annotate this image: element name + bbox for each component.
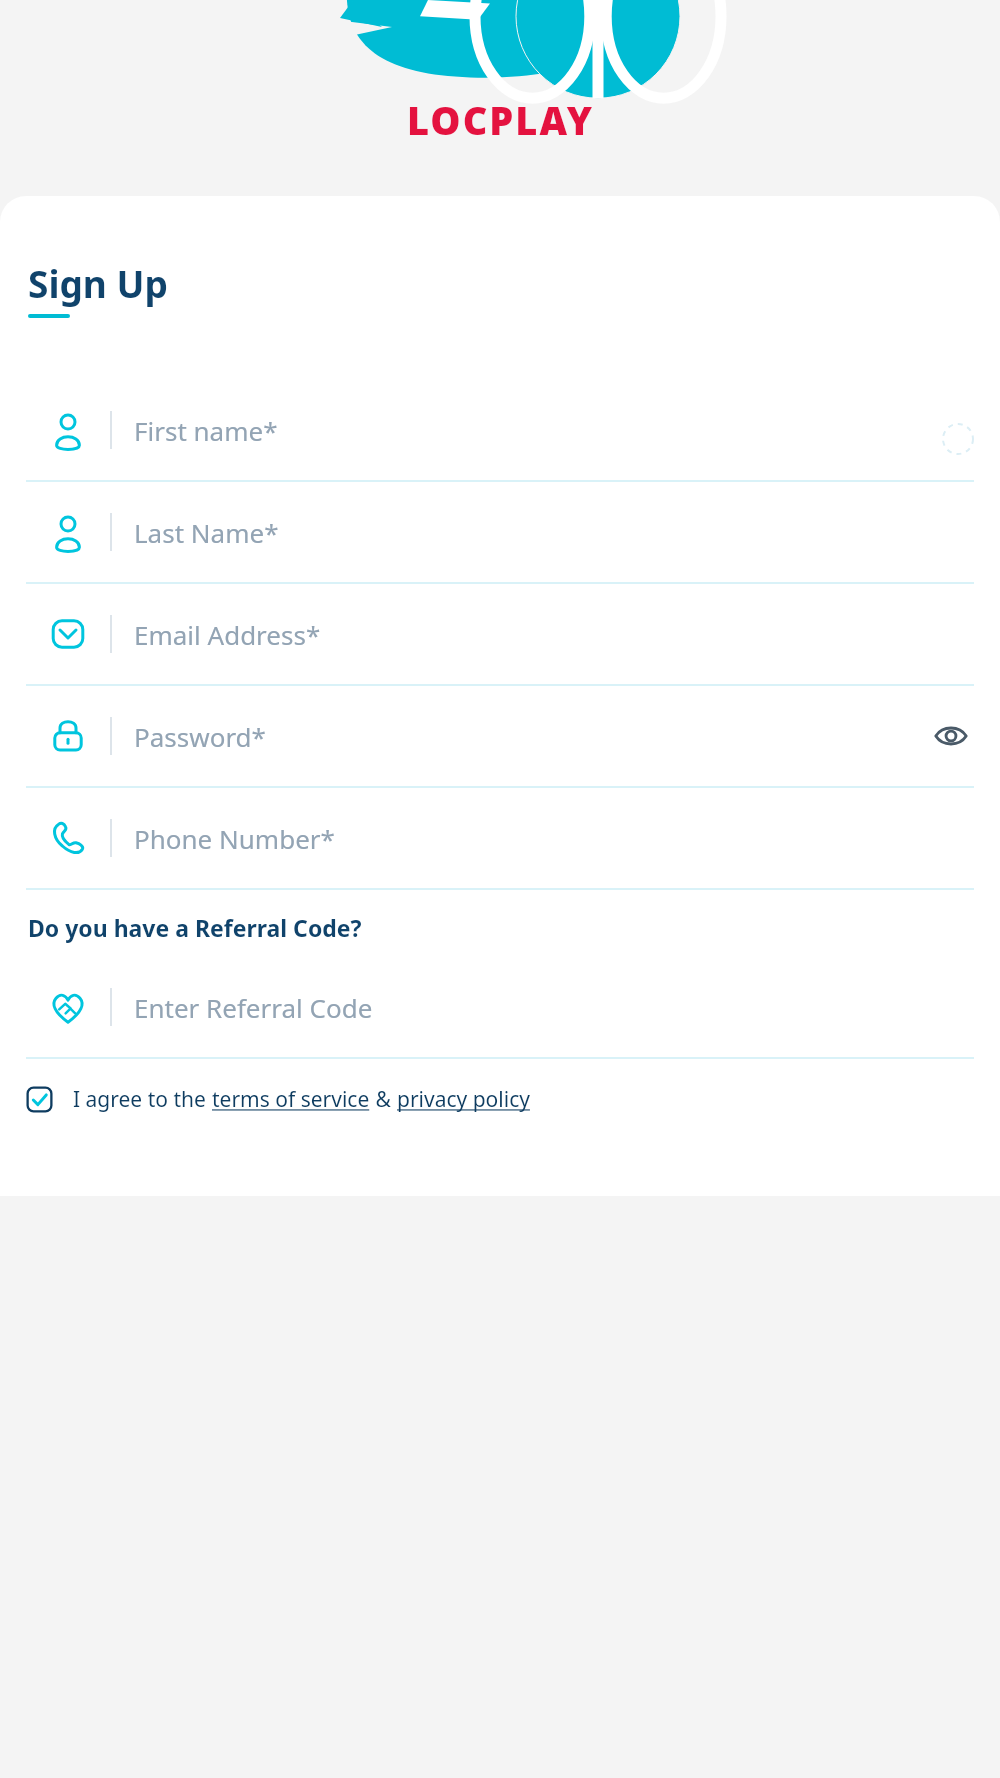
button[interactable]: terms of service xyxy=(212,1085,370,1114)
staticText: Password* xyxy=(134,719,266,754)
staticText: & xyxy=(370,1085,397,1114)
staticText: I agree to the xyxy=(73,1085,212,1114)
button[interactable]: Show password xyxy=(932,717,970,755)
button[interactable]: First name* xyxy=(26,380,974,482)
staticText: Enter Referral Code xyxy=(134,990,373,1025)
staticText: Sign Up xyxy=(28,258,168,308)
staticText: First name* xyxy=(134,413,278,448)
button[interactable]: privacy policy xyxy=(397,1085,530,1114)
staticText: Email Address* xyxy=(134,617,321,652)
staticText: Do you have a Referral Code? xyxy=(28,912,362,943)
button[interactable]: Password* xyxy=(26,686,974,788)
button[interactable]: Enter Referral Code xyxy=(26,957,974,1059)
button[interactable]: Email Address* xyxy=(26,584,974,686)
staticText: Phone Number* xyxy=(134,821,335,856)
staticText: LOCPLAY xyxy=(407,94,594,146)
button[interactable]: Phone Number* xyxy=(26,788,974,890)
button[interactable]: I agree to the xyxy=(26,1081,974,1118)
staticText: Last Name* xyxy=(134,515,279,550)
button[interactable]: Last Name* xyxy=(26,482,974,584)
